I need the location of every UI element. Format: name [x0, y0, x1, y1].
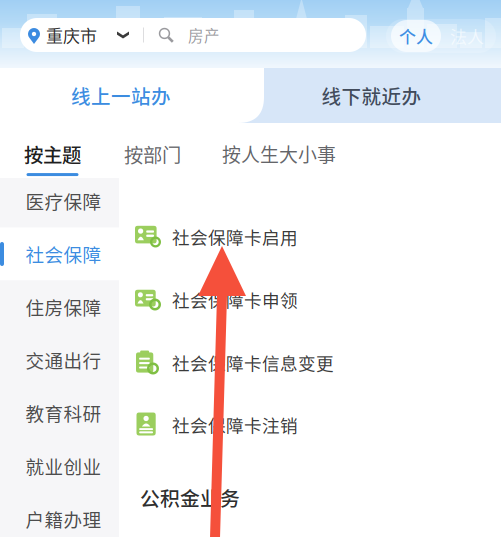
staticText: 个人 [399, 24, 433, 48]
staticText: 公积金业务 [140, 483, 240, 512]
staticText: 户籍办理 [25, 505, 101, 532]
staticText: 按主题 [24, 140, 81, 168]
button[interactable]: 个人 [391, 20, 441, 52]
button[interactable]: 社会保障卡信息变更 [119, 331, 501, 394]
staticText: 社会保障卡注销 [172, 412, 298, 437]
button[interactable]: 户籍办理 [0, 492, 119, 537]
staticText: 按人生大小事 [222, 140, 336, 167]
staticText: 社会保障卡信息变更 [172, 350, 334, 375]
button[interactable]: 按主题 [24, 140, 81, 176]
staticText: 按部门 [124, 140, 181, 168]
button[interactable]: 线上一站办 [0, 68, 242, 123]
button[interactable]: 线下就近办 [242, 68, 501, 123]
button[interactable]: 就业创业 [0, 439, 119, 492]
staticText: 线上一站办 [71, 81, 171, 110]
button[interactable]: 社会保障卡注销 [119, 393, 501, 456]
button[interactable]: 教育科研 [0, 386, 119, 439]
staticText: 社会保障卡启用 [172, 224, 298, 249]
staticText: 社会保障 [25, 240, 101, 267]
staticText: 法人 [450, 24, 484, 48]
button[interactable]: 医疗保障 [0, 174, 119, 227]
button[interactable]: 按人生大小事 [222, 140, 336, 167]
button[interactable]: 法人 [444, 20, 490, 52]
button[interactable]: 重庆市 [20, 18, 366, 52]
button[interactable]: 社会保障卡申领 [119, 268, 501, 331]
button[interactable]: 交通出行 [0, 333, 119, 386]
button[interactable]: 住房保障 [0, 280, 119, 333]
staticText: 就业创业 [25, 452, 101, 479]
staticText: 交通出行 [25, 346, 101, 373]
button[interactable]: 社会保障卡启用 [119, 205, 501, 268]
button[interactable]: 按部门 [124, 140, 181, 168]
staticText: 社会保障卡申领 [172, 287, 298, 312]
staticText: 重庆市 [46, 23, 97, 47]
staticText: 医疗保障 [25, 187, 101, 214]
staticText: 住房保障 [25, 293, 101, 320]
button[interactable]: 社会保障 [0, 227, 119, 280]
staticText: 线下就近办 [321, 81, 421, 110]
staticText: 房产 [188, 24, 220, 46]
staticText: 教育科研 [25, 399, 101, 426]
